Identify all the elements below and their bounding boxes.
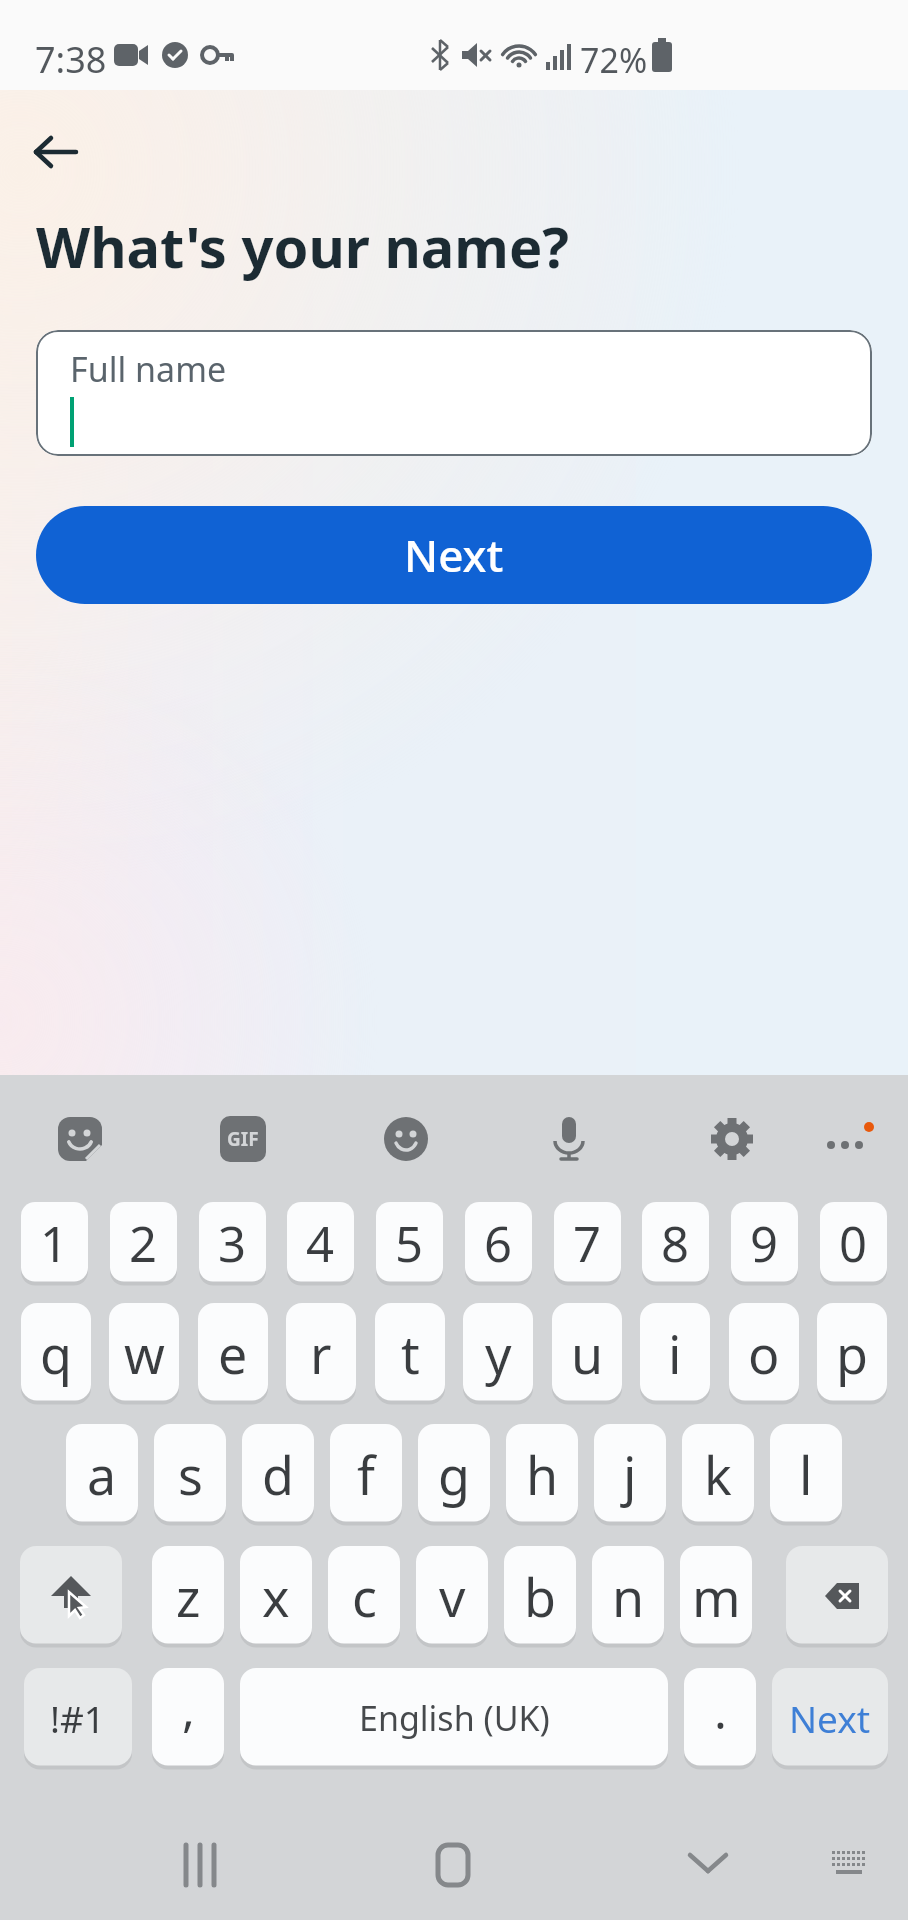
button[interactable]: GIF: [220, 1116, 266, 1162]
staticText: b: [524, 1561, 556, 1632]
staticText: 3: [218, 1210, 247, 1277]
staticText: e: [218, 1318, 248, 1389]
staticText: Full name: [70, 346, 227, 392]
staticText: w: [124, 1318, 165, 1389]
button[interactable]: l: [770, 1424, 842, 1524]
staticText: j: [623, 1439, 637, 1510]
button[interactable]: [709, 1116, 755, 1162]
staticText: ,: [182, 1676, 195, 1741]
button[interactable]: 2: [110, 1202, 177, 1284]
button[interactable]: [30, 126, 82, 178]
button[interactable]: y: [463, 1303, 533, 1403]
button[interactable]: o: [729, 1303, 799, 1403]
button[interactable]: [830, 1845, 868, 1883]
staticText: p: [836, 1318, 868, 1389]
staticText: s: [178, 1439, 203, 1510]
staticText: o: [748, 1318, 780, 1389]
button[interactable]: [824, 1119, 876, 1159]
button[interactable]: ,: [152, 1668, 224, 1768]
button[interactable]: English (UK): [240, 1668, 668, 1768]
staticText: 7:38: [35, 35, 107, 84]
button[interactable]: w: [109, 1303, 179, 1403]
staticText: 2: [129, 1210, 158, 1277]
button[interactable]: Full name: [36, 330, 872, 456]
staticText: !#1: [50, 1693, 106, 1743]
button[interactable]: s: [154, 1424, 226, 1524]
staticText: i: [668, 1318, 682, 1389]
button[interactable]: n: [592, 1546, 664, 1646]
button[interactable]: [383, 1116, 429, 1162]
button[interactable]: Next: [772, 1668, 888, 1768]
staticText: h: [526, 1439, 559, 1510]
staticText: 72%: [580, 37, 648, 83]
staticText: v: [439, 1561, 466, 1632]
staticText: n: [612, 1561, 645, 1632]
button[interactable]: 8: [642, 1202, 709, 1284]
button[interactable]: 7: [554, 1202, 621, 1284]
button[interactable]: m: [680, 1546, 752, 1646]
staticText: r: [310, 1318, 332, 1389]
button[interactable]: c: [328, 1546, 400, 1646]
button[interactable]: v: [416, 1546, 488, 1646]
button[interactable]: [686, 1849, 730, 1879]
staticText: z: [176, 1561, 201, 1632]
button[interactable]: [436, 1843, 470, 1887]
staticText: 1: [40, 1210, 69, 1277]
staticText: Next: [789, 1693, 871, 1743]
button[interactable]: [56, 1115, 104, 1163]
staticText: 4: [306, 1210, 335, 1277]
staticText: l: [799, 1439, 813, 1510]
button[interactable]: 3: [199, 1202, 266, 1284]
staticText: a: [87, 1439, 117, 1510]
staticText: c: [352, 1561, 377, 1632]
button[interactable]: r: [286, 1303, 356, 1403]
staticText: d: [262, 1439, 294, 1510]
staticText: 8: [661, 1210, 690, 1277]
staticText: m: [692, 1561, 741, 1632]
staticText: g: [438, 1439, 470, 1510]
staticText: u: [571, 1318, 604, 1389]
staticText: 6: [484, 1210, 513, 1277]
button[interactable]: 0: [820, 1202, 887, 1284]
button[interactable]: z: [152, 1546, 224, 1646]
staticText: f: [357, 1439, 375, 1510]
staticText: 5: [395, 1210, 424, 1277]
button[interactable]: j: [594, 1424, 666, 1524]
staticText: x: [262, 1561, 290, 1632]
staticText: Next: [404, 525, 504, 585]
button[interactable]: t: [375, 1303, 445, 1403]
button[interactable]: x: [240, 1546, 312, 1646]
button[interactable]: [786, 1546, 888, 1646]
button[interactable]: u: [552, 1303, 622, 1403]
staticText: 0: [839, 1210, 868, 1277]
staticText: GIF: [227, 1126, 259, 1152]
button[interactable]: d: [242, 1424, 314, 1524]
staticText: .: [714, 1678, 727, 1743]
button[interactable]: b: [504, 1546, 576, 1646]
button[interactable]: e: [198, 1303, 268, 1403]
staticText: q: [40, 1318, 72, 1389]
button[interactable]: q: [21, 1303, 91, 1403]
button[interactable]: 1: [21, 1202, 88, 1284]
button[interactable]: f: [330, 1424, 402, 1524]
button[interactable]: g: [418, 1424, 490, 1524]
button[interactable]: 5: [376, 1202, 443, 1284]
button[interactable]: [20, 1546, 122, 1646]
button[interactable]: 6: [465, 1202, 532, 1284]
button[interactable]: k: [682, 1424, 754, 1524]
button[interactable]: a: [66, 1424, 138, 1524]
staticText: k: [704, 1439, 732, 1510]
button[interactable]: 4: [287, 1202, 354, 1284]
button[interactable]: 9: [731, 1202, 798, 1284]
button[interactable]: [546, 1115, 592, 1161]
staticText: What's your name?: [36, 208, 570, 284]
button[interactable]: .: [684, 1668, 756, 1768]
button[interactable]: h: [506, 1424, 578, 1524]
staticText: English (UK): [359, 1695, 550, 1741]
button[interactable]: p: [817, 1303, 887, 1403]
button[interactable]: [183, 1843, 219, 1887]
button[interactable]: Next: [36, 506, 872, 604]
button[interactable]: !#1: [24, 1668, 132, 1768]
button[interactable]: i: [640, 1303, 710, 1403]
staticText: 9: [750, 1210, 779, 1277]
